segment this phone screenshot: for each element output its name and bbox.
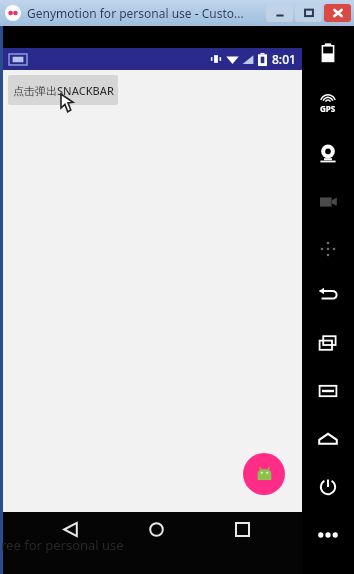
button[interactable]: Home [133, 512, 179, 546]
button[interactable]: 点击弹出SNACKBAR [8, 75, 118, 105]
button[interactable]: Camera [308, 138, 348, 168]
button[interactable]: Video [308, 186, 348, 216]
button[interactable]: Power [308, 472, 348, 502]
staticText: ree for personal use [1, 536, 124, 554]
button[interactable]: Back [47, 512, 93, 546]
staticText: GPS [320, 103, 336, 114]
button[interactable]: Recent apps [219, 512, 265, 546]
button[interactable]: Android action [243, 453, 285, 495]
button[interactable]: GPS [308, 86, 348, 120]
button[interactable]: Window control [295, 4, 322, 22]
button[interactable]: Window control [324, 4, 351, 22]
button[interactable]: Recent apps [308, 328, 348, 358]
button[interactable]: D-pad [308, 234, 348, 264]
button[interactable]: Battery [308, 38, 348, 68]
button[interactable]: Menu [308, 376, 348, 406]
button[interactable]: Home [308, 424, 348, 454]
staticText: 点击弹出SNACKBAR [13, 83, 114, 98]
button[interactable]: More options [308, 522, 348, 548]
button[interactable]: Window control [266, 4, 293, 22]
staticText: 8:01 [272, 51, 296, 67]
staticText: Genymotion for personal use - Custo... [27, 5, 244, 21]
button[interactable]: Back [308, 278, 348, 308]
